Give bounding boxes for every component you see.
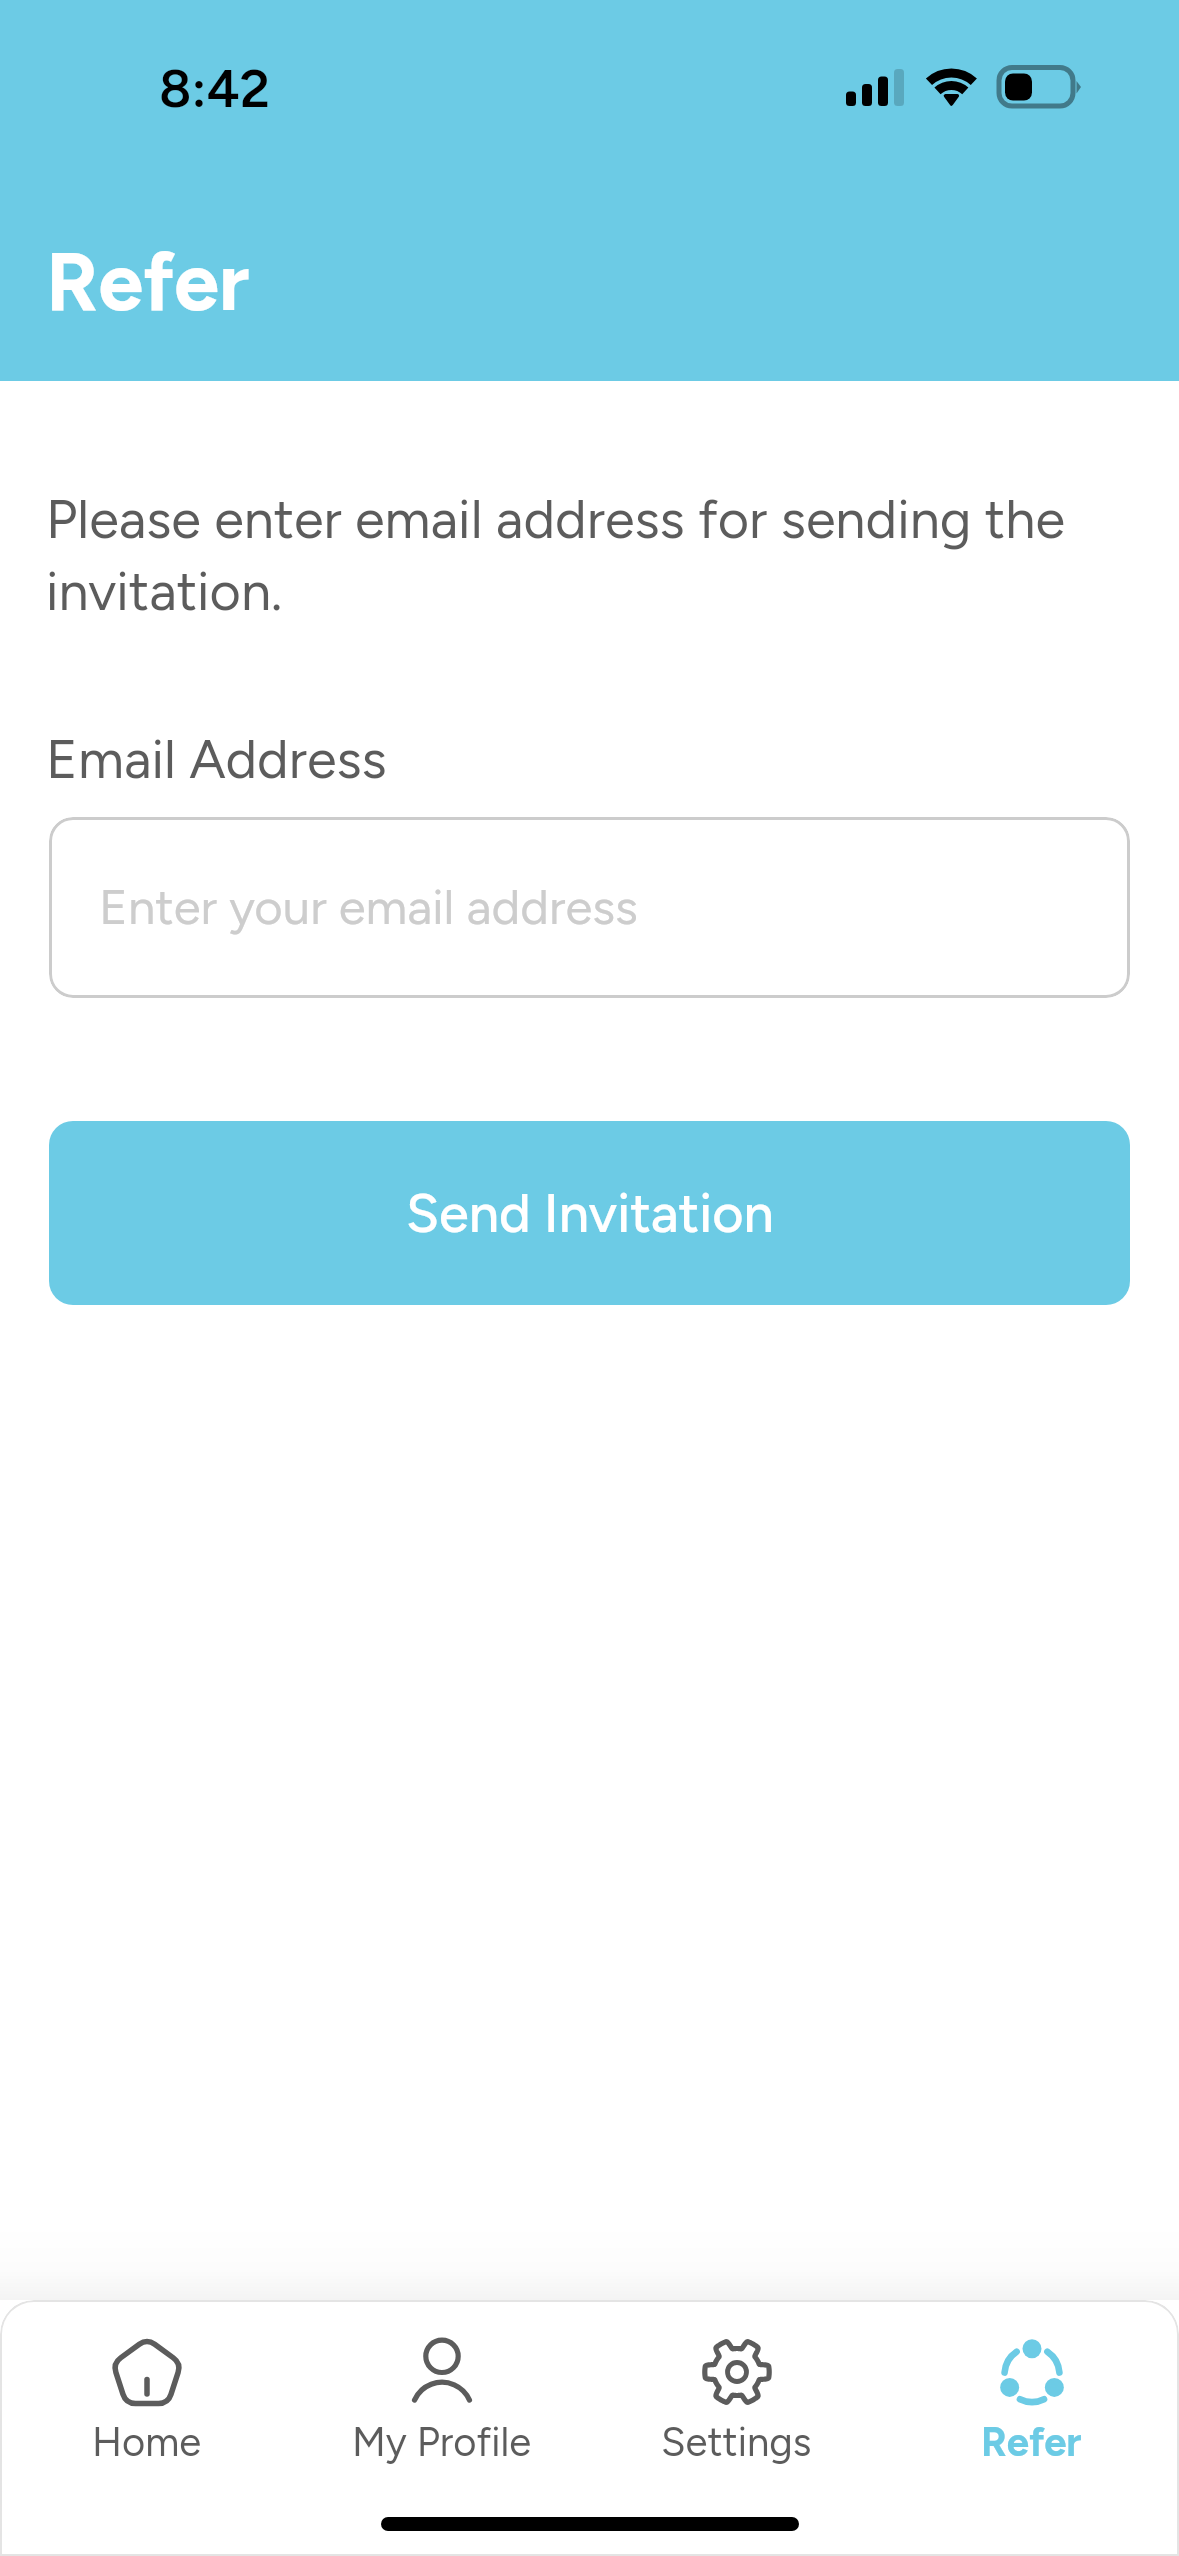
staticText: Refer	[981, 2418, 1082, 2466]
button[interactable]: Enter your email address	[49, 817, 1130, 998]
button[interactable]: My Profile	[294, 2300, 589, 2556]
staticText: Home	[92, 2418, 202, 2466]
button[interactable]: Send Invitation	[49, 1121, 1130, 1305]
staticText: Send Invitation	[406, 1181, 774, 1246]
staticText: Email Address	[46, 727, 387, 792]
staticText: Refer	[46, 233, 250, 330]
staticText: Settings	[661, 2418, 812, 2466]
button[interactable]: Refer	[884, 2300, 1179, 2556]
staticText: 8:42	[159, 57, 270, 121]
button[interactable]: Home	[0, 2300, 294, 2556]
staticText: Enter your email address	[99, 877, 638, 936]
staticText: My Profile	[352, 2418, 532, 2466]
button[interactable]: Settings	[589, 2300, 884, 2556]
staticText: Please enter email address for sending t…	[46, 487, 1116, 623]
